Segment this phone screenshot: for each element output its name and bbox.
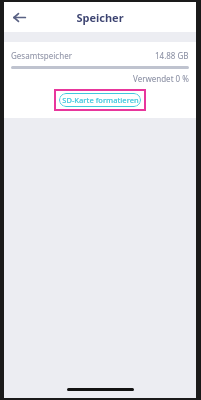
- staticText: Gesamtspeicher: [11, 50, 72, 61]
- button[interactable]: Zurück: [8, 6, 30, 28]
- button[interactable]: SD-Karte formatieren: [59, 93, 141, 107]
- staticText: SD-Karte formatieren: [62, 95, 139, 105]
- staticText: Speicher: [76, 10, 124, 25]
- staticText: 14.88 GB: [155, 50, 189, 61]
- staticText: Verwendet 0 %: [133, 73, 189, 84]
